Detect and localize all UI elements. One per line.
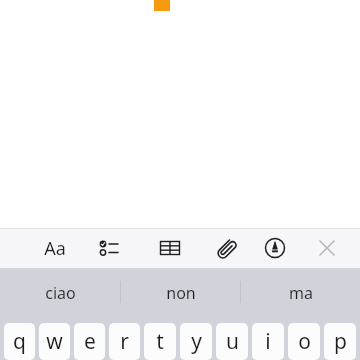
staticText: i xyxy=(265,327,271,356)
button[interactable]: Checklist xyxy=(88,228,132,268)
button[interactable]: q xyxy=(4,323,35,360)
button[interactable]: u xyxy=(216,323,248,360)
button[interactable]: Markup xyxy=(253,228,297,268)
staticText: ma xyxy=(289,282,313,304)
staticText: t xyxy=(156,327,164,356)
button[interactable]: Close xyxy=(305,228,349,268)
button[interactable]: Table xyxy=(148,228,192,268)
staticText: y xyxy=(191,327,202,356)
staticText: o xyxy=(298,327,311,356)
button[interactable]: ciao xyxy=(0,268,120,317)
staticText: q xyxy=(13,327,26,356)
staticText: e xyxy=(84,327,96,356)
staticText: Aa xyxy=(44,236,66,261)
button[interactable]: w xyxy=(39,323,70,360)
button[interactable]: Attach xyxy=(203,228,247,268)
button[interactable]: t xyxy=(144,323,176,360)
button[interactable]: y xyxy=(180,323,212,360)
button[interactable]: Text format xyxy=(33,228,77,268)
staticText: ciao xyxy=(45,282,76,304)
staticText: r xyxy=(120,327,129,356)
button[interactable]: p xyxy=(324,323,356,360)
button[interactable]: r xyxy=(109,323,140,360)
button[interactable]: e xyxy=(74,323,105,360)
staticText: non xyxy=(166,282,196,304)
staticText: p xyxy=(334,327,347,356)
button[interactable]: non xyxy=(121,268,240,317)
button[interactable]: o xyxy=(288,323,320,360)
button[interactable]: i xyxy=(252,323,284,360)
staticText: w xyxy=(46,327,63,356)
staticText: u xyxy=(226,327,239,356)
button[interactable]: ma xyxy=(241,268,360,317)
